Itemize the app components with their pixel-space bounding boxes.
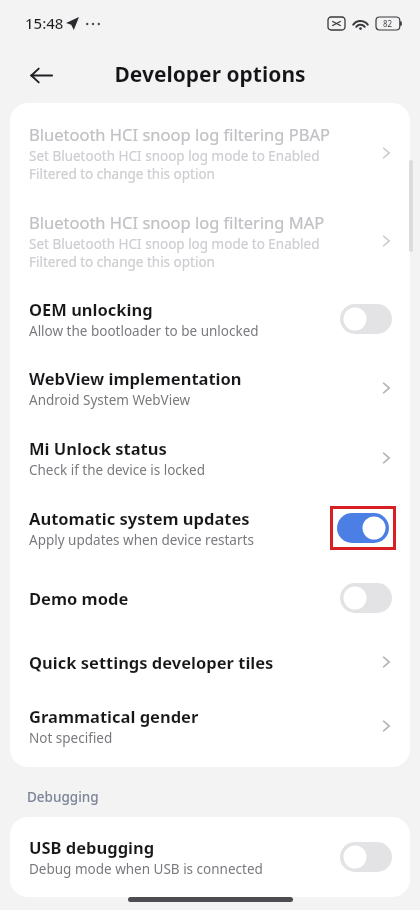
button[interactable]: Quick settings developer tiles [10, 633, 410, 691]
button[interactable]: Demo mode toggle [336, 579, 396, 617]
staticText: Automatic system updates [29, 507, 250, 529]
button[interactable]: OEM unlocking toggle [336, 300, 396, 338]
button[interactable]: USB debugging toggle [336, 838, 396, 876]
button[interactable]: USB debugging [10, 823, 410, 891]
staticText: Bluetooth HCI snoop log filtering PBAP [29, 123, 330, 145]
button[interactable]: Automatic system updates [10, 493, 410, 563]
staticText: Apply updates when device restarts [29, 531, 254, 549]
staticText: Android System WebView [29, 391, 191, 409]
staticText: Mi Unlock status [29, 437, 167, 459]
button[interactable]: Demo mode [10, 563, 410, 633]
staticText: Check if the device is locked [29, 461, 205, 479]
staticText: Set Bluetooth HCI snoop log mode to Enab… [29, 147, 320, 183]
staticText: Debug mode when USB is connected [29, 860, 263, 878]
staticText: Grammatical gender [29, 705, 199, 727]
staticText: Not specified [29, 729, 113, 747]
staticText: Allow the bootloader to be unlocked [29, 322, 259, 340]
staticText: Set Bluetooth HCI snoop log mode to Enab… [29, 235, 320, 271]
button[interactable]: Bluetooth HCI snoop log filtering MAP [10, 197, 410, 285]
staticText: 82 [383, 18, 393, 29]
staticText: Demo mode [29, 587, 129, 609]
button[interactable]: Mi Unlock status [10, 423, 410, 493]
staticText: WebView implementation [29, 367, 242, 389]
staticText: OEM unlocking [29, 298, 153, 320]
staticText: Quick settings developer tiles [29, 651, 274, 673]
button[interactable]: WebView implementation [10, 353, 410, 423]
button[interactable]: Bluetooth HCI snoop log filtering PBAP [10, 109, 410, 197]
button[interactable]: OEM unlocking [10, 285, 410, 353]
button[interactable]: Grammatical gender [10, 691, 410, 761]
button[interactable]: Back [20, 54, 62, 96]
staticText: Debugging [27, 788, 99, 806]
staticText: Bluetooth HCI snoop log filtering MAP [29, 211, 325, 233]
staticText: 15:48 [25, 13, 64, 33]
staticText: USB debugging [29, 836, 155, 858]
button[interactable]: Automatic system updates toggle [337, 513, 389, 543]
staticText: Developer options [114, 60, 306, 89]
